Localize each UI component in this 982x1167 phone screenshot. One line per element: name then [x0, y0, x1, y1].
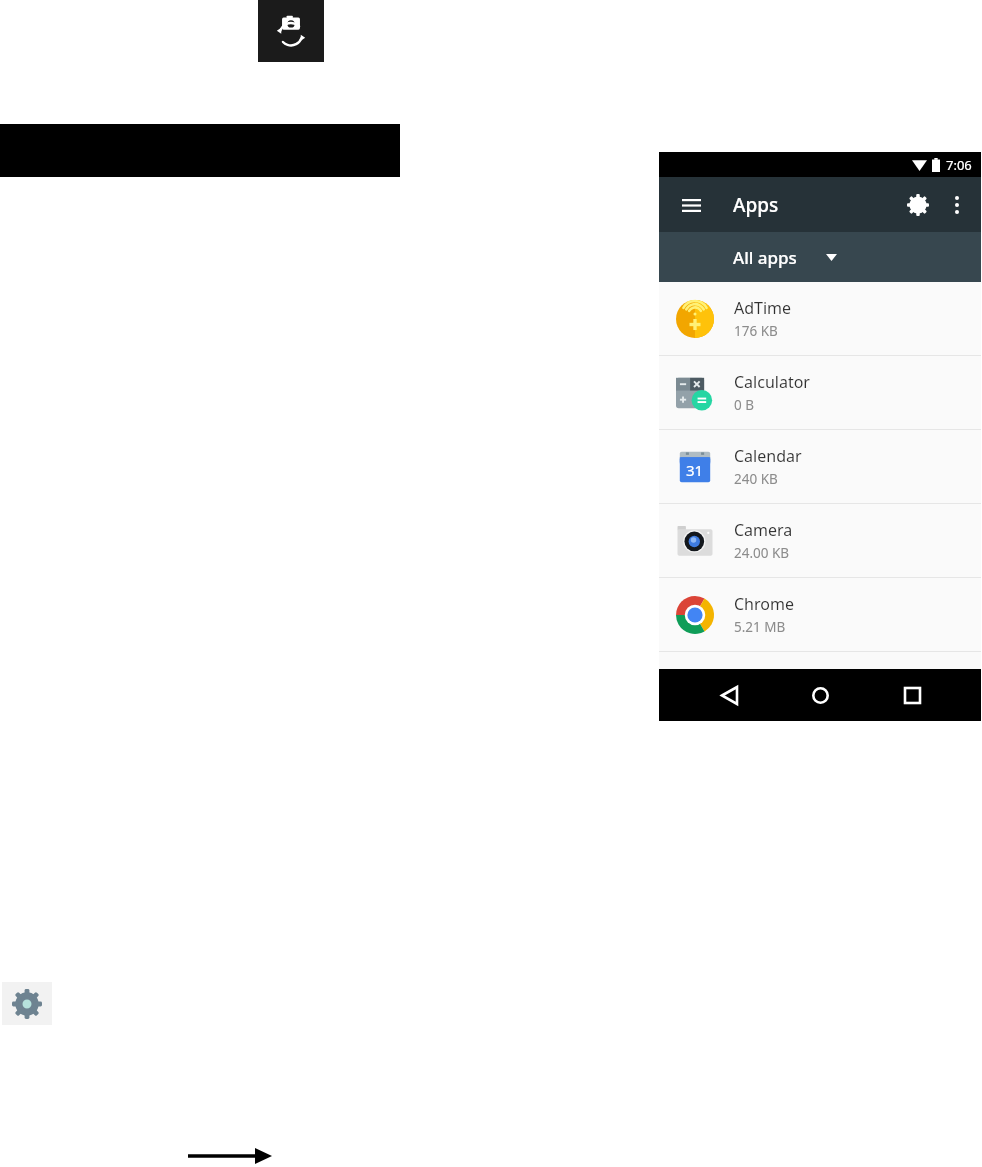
button[interactable]: Back — [707, 673, 751, 717]
staticText: Camera — [734, 519, 793, 541]
button[interactable]: Open navigation drawer — [671, 185, 711, 225]
staticText: Apps — [733, 192, 779, 218]
staticText: 5.21 MB — [734, 618, 786, 636]
button[interactable]: Home — [798, 673, 842, 717]
staticText: Calendar — [734, 445, 802, 467]
staticText: 24.00 KB — [734, 544, 790, 562]
staticText: 176 KB — [734, 322, 778, 340]
button[interactable]: Switch camera — [258, 0, 324, 62]
button[interactable]: Camera — [659, 504, 981, 577]
button[interactable]: All apps — [659, 232, 981, 282]
staticText: 7:06 — [946, 156, 972, 174]
staticText: 240 KB — [734, 470, 778, 488]
button[interactable]: Settings — [897, 184, 939, 226]
staticText: Chrome — [734, 593, 794, 615]
staticText: 31 — [686, 460, 704, 480]
button[interactable]: Chrome — [659, 578, 981, 651]
staticText: Calculator — [734, 371, 810, 393]
button[interactable]: 31 — [659, 430, 981, 503]
staticText: All apps — [733, 246, 797, 269]
button[interactable]: Settings — [2, 982, 52, 1025]
button[interactable]: More options — [939, 187, 975, 223]
staticText: 0 B — [734, 396, 755, 414]
staticText: AdTime — [734, 297, 792, 319]
button[interactable]: AdTime — [659, 282, 981, 355]
button[interactable]: Recent apps — [890, 673, 934, 717]
button[interactable]: Calculator — [659, 356, 981, 429]
